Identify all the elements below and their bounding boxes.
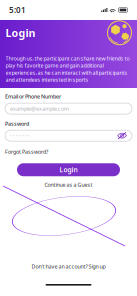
staticText: • • • • • • • <box>10 133 30 138</box>
button[interactable]: Forgot Password? <box>5 148 48 155</box>
staticText: Continue as a Guest <box>44 181 92 188</box>
staticText: Email or Phone Number <box>5 93 61 100</box>
staticText: Login <box>5 26 35 40</box>
button[interactable]: Don't have an account? Sign up <box>0 263 137 270</box>
staticText: Login <box>59 165 77 174</box>
staticText: 5:01 <box>9 5 26 15</box>
staticText: Don't have an account? Sign up <box>31 263 105 270</box>
staticText: Forgot Password? <box>5 148 48 155</box>
staticText: Password <box>5 120 29 127</box>
staticText: example@example.com <box>10 105 69 112</box>
button[interactable]: Continue as a Guest <box>5 181 132 188</box>
button[interactable]: Login <box>17 163 120 176</box>
staticText: Through us, the participant can share ne… <box>5 55 129 83</box>
